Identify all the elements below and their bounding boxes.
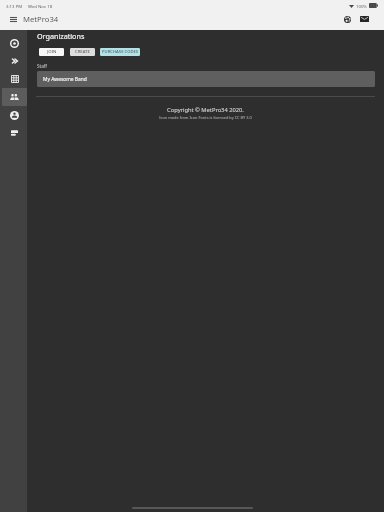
button[interactable]: PURCHASE CODES xyxy=(100,48,140,56)
staticText: CREATE xyxy=(75,49,90,55)
button[interactable]: Organizations xyxy=(2,88,27,106)
staticText: Icon made from Icon Fonts is licensed by… xyxy=(27,115,384,120)
button[interactable]: Notes xyxy=(2,124,27,142)
staticText: My Awesome Band xyxy=(43,76,87,83)
button[interactable]: Open navigation menu xyxy=(5,11,21,27)
button[interactable]: CREATE xyxy=(70,48,95,56)
button[interactable]: Messages xyxy=(356,11,372,27)
button[interactable]: My Awesome Band xyxy=(37,71,375,87)
staticText: 3:13 PM xyxy=(6,3,23,9)
button[interactable]: Metronome xyxy=(2,34,27,52)
staticText: MetPro34 xyxy=(23,14,59,24)
staticText: Staff xyxy=(37,63,47,69)
staticText: JOIN xyxy=(47,49,57,55)
staticText: 100% xyxy=(356,3,367,9)
button[interactable]: Grids xyxy=(2,70,27,88)
staticText: Copyright © MetPro34 2020. xyxy=(27,106,384,114)
staticText: Wed Nov 18 xyxy=(28,3,53,9)
button[interactable]: Account xyxy=(2,106,27,124)
button[interactable]: Change theme xyxy=(339,11,355,27)
staticText: PURCHASE CODES xyxy=(102,49,139,55)
staticText: Organizations xyxy=(37,31,85,41)
button[interactable]: JOIN xyxy=(39,48,64,56)
button[interactable]: Advance xyxy=(2,52,27,70)
